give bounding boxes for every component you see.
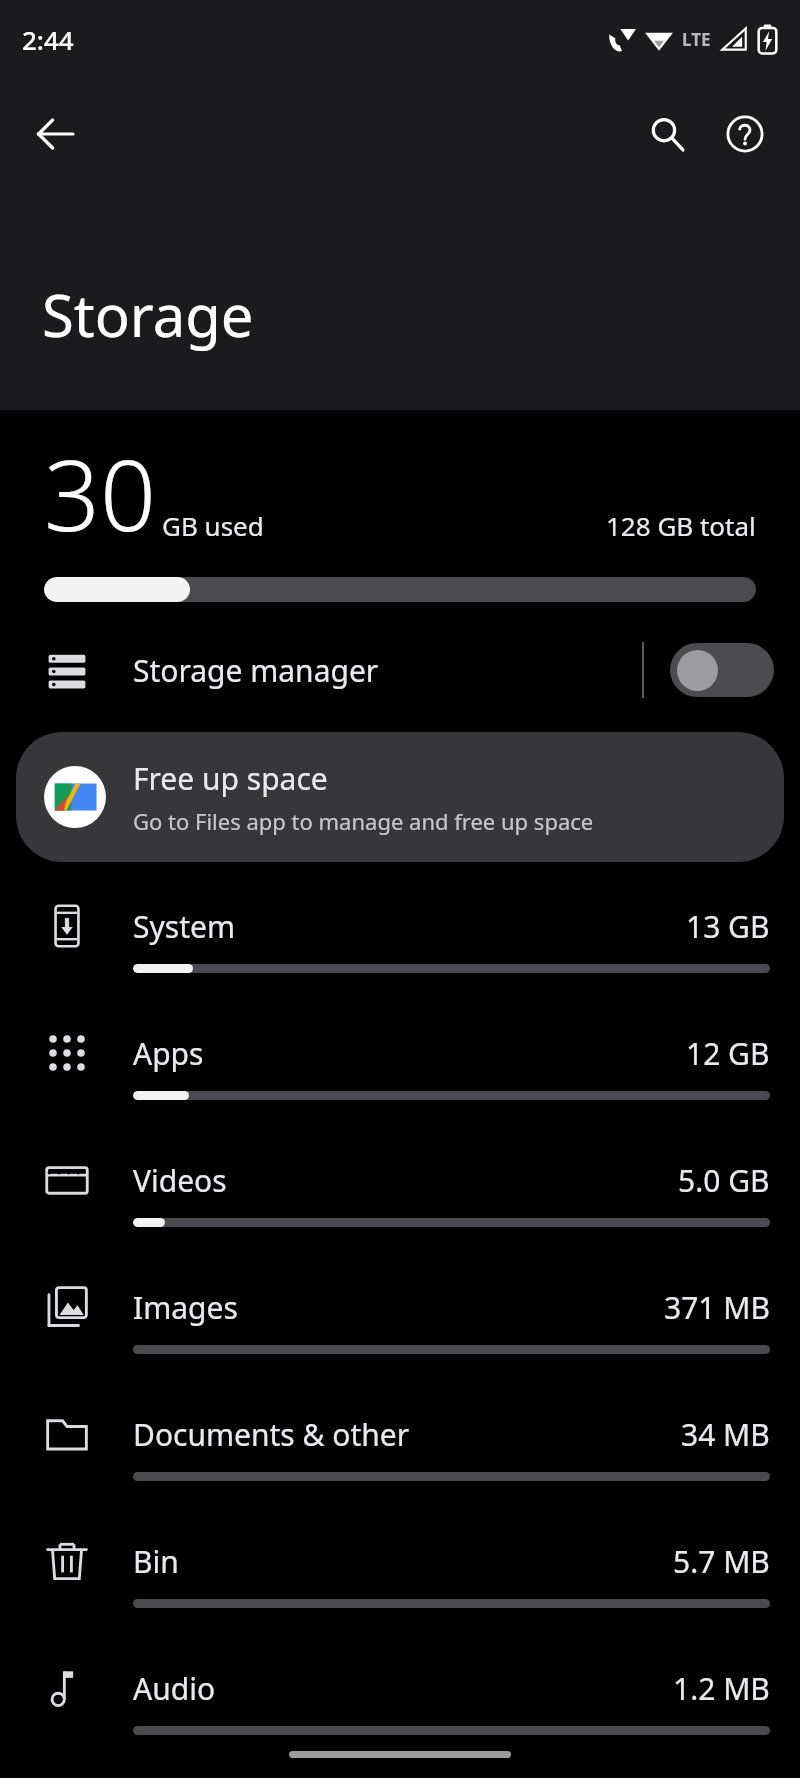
button[interactable]: Storage manager <box>0 622 800 718</box>
staticText: LTE <box>682 28 711 51</box>
staticText: 13 GB <box>686 906 770 947</box>
button[interactable]: Documents & other <box>0 1396 800 1523</box>
staticText: 1.2 MB <box>673 1668 770 1709</box>
staticText: 12 GB <box>686 1033 770 1074</box>
staticText: Free up space <box>133 758 328 799</box>
staticText: Go to Files app to manage and free up sp… <box>133 806 594 836</box>
button[interactable]: Images <box>0 1269 800 1396</box>
button[interactable]: Apps <box>0 1015 800 1142</box>
staticText: 30 <box>44 426 156 559</box>
button[interactable]: System <box>0 888 800 1015</box>
staticText: GB used <box>162 508 264 543</box>
button[interactable]: Videos <box>0 1142 800 1269</box>
staticText: Bin <box>133 1541 179 1582</box>
staticText: 2:44 <box>22 22 74 57</box>
staticText: System <box>133 906 235 947</box>
button[interactable]: Audio <box>0 1650 800 1777</box>
staticText: 5.7 MB <box>673 1541 770 1582</box>
button[interactable]: Help <box>706 95 784 173</box>
button[interactable]: Back <box>16 95 94 173</box>
staticText: Storage manager <box>133 650 379 691</box>
staticText: Apps <box>133 1033 204 1074</box>
staticText: Images <box>133 1287 238 1328</box>
staticText: Videos <box>133 1160 227 1201</box>
staticText: 34 MB <box>681 1414 770 1455</box>
button[interactable]: Bin <box>0 1523 800 1650</box>
staticText: 371 MB <box>664 1287 770 1328</box>
staticText: 5.0 GB <box>678 1160 770 1201</box>
staticText: 128 GB total <box>606 508 756 543</box>
staticText: Audio <box>133 1668 216 1709</box>
button[interactable]: Storage manager toggle, off <box>670 643 774 697</box>
staticText: Documents & other <box>133 1414 410 1455</box>
button[interactable]: Search <box>628 95 706 173</box>
button[interactable]: Free up space <box>16 732 784 862</box>
staticText: Storage <box>42 275 254 354</box>
